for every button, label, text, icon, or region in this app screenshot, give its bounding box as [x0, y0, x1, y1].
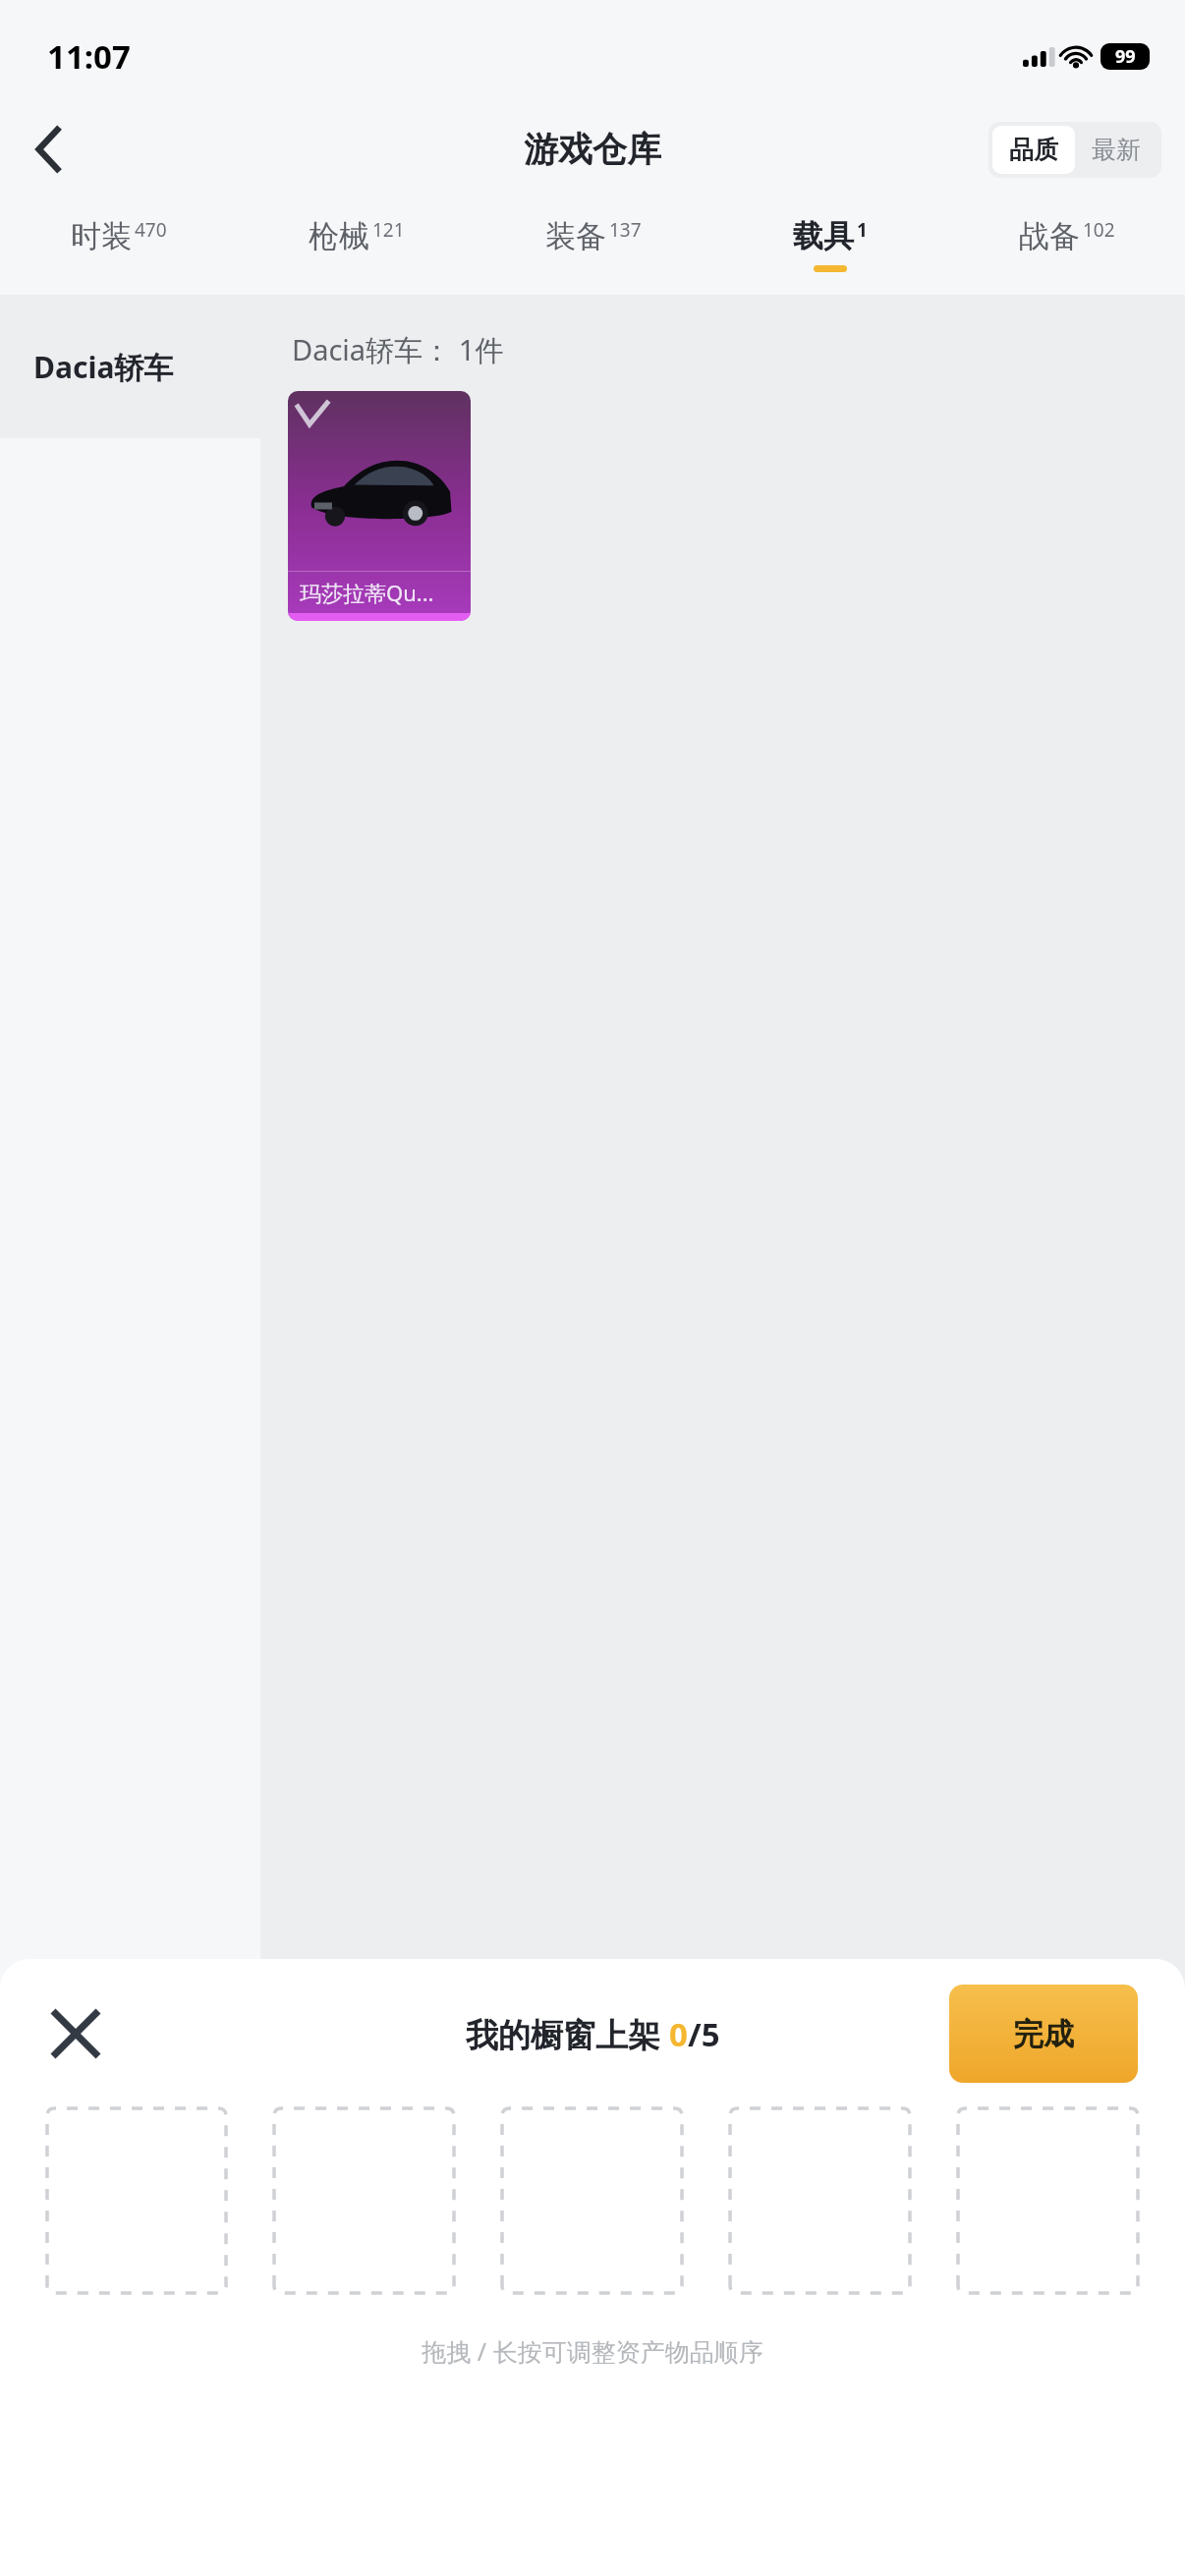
button[interactable]: 品质: [1009, 135, 1058, 165]
staticText: 137: [609, 217, 642, 243]
staticText: 战备: [1019, 217, 1080, 255]
staticText: 游戏仓库: [524, 128, 661, 171]
staticText: 装备: [545, 217, 606, 255]
button[interactable]: Empty slot: [958, 2108, 1138, 2293]
button[interactable]: 时装: [0, 195, 238, 295]
staticText: 470: [135, 217, 167, 243]
button[interactable]: 完成: [949, 1985, 1138, 2083]
staticText: 载具: [793, 217, 854, 255]
staticText: 最新: [1092, 135, 1141, 165]
staticText: Dacia轿车: [33, 347, 174, 387]
staticText: 我的橱窗上架: [466, 2012, 669, 2056]
staticText: 品质: [1009, 135, 1058, 165]
staticText: 拖拽 / 长按可调整资产物品顺序: [0, 2334, 1185, 2368]
staticText: 102: [1083, 217, 1115, 243]
button[interactable]: Back: [20, 120, 79, 179]
staticText: 0: [669, 2012, 688, 2056]
button[interactable]: Dacia轿车: [33, 295, 260, 438]
button[interactable]: 玛莎拉蒂Qu...: [288, 391, 471, 621]
staticText: 枪械: [309, 217, 369, 255]
staticText: Dacia轿车： 1件: [292, 330, 504, 369]
button[interactable]: 最新: [1092, 135, 1141, 165]
button[interactable]: Close: [41, 1999, 110, 2068]
staticText: 11:07: [47, 34, 131, 79]
staticText: 121: [372, 217, 405, 243]
button[interactable]: Empty slot: [274, 2108, 454, 2293]
staticText: 99: [1115, 44, 1136, 69]
button[interactable]: 战备: [948, 195, 1185, 295]
button[interactable]: 载具: [711, 195, 948, 295]
staticText: 1: [857, 217, 868, 243]
staticText: /5: [688, 2012, 720, 2056]
button[interactable]: Empty slot: [730, 2108, 910, 2293]
button[interactable]: Empty slot: [47, 2108, 226, 2293]
button[interactable]: 枪械: [238, 195, 475, 295]
staticText: 玛莎拉蒂Qu...: [300, 578, 434, 607]
button[interactable]: 装备: [475, 195, 711, 295]
button[interactable]: Empty slot: [502, 2108, 682, 2293]
staticText: 时装: [71, 217, 132, 255]
staticText: 完成: [1013, 2015, 1074, 2053]
